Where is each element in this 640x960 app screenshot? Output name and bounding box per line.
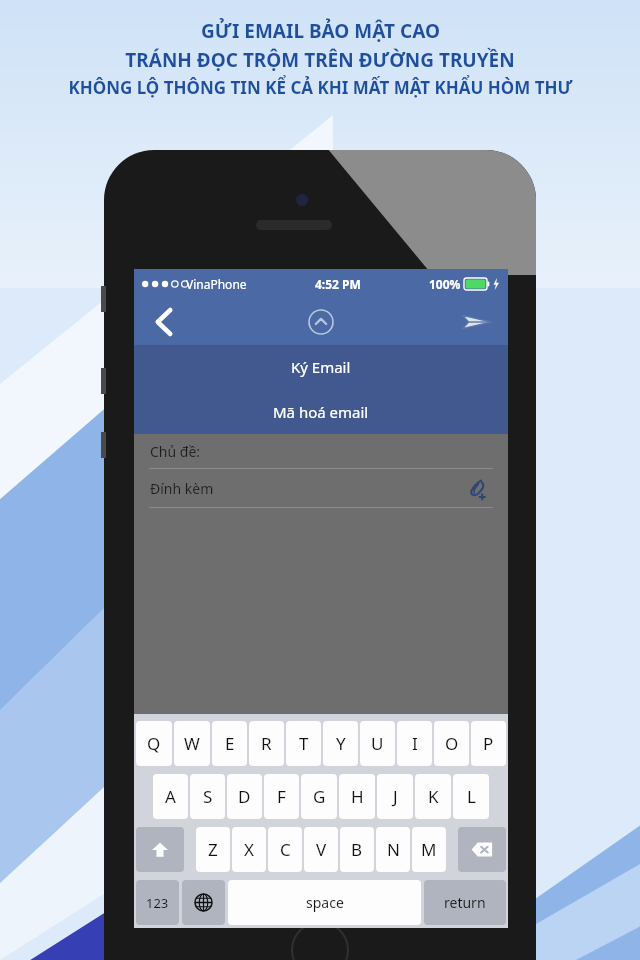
button[interactable]: Ký Email (134, 345, 508, 389)
button[interactable]: F (264, 774, 299, 819)
staticText: W (184, 732, 200, 755)
staticText: K (428, 785, 439, 808)
staticText: N (387, 838, 400, 861)
button[interactable]: Chủ đề: (134, 434, 508, 469)
staticText: R (261, 732, 272, 755)
button[interactable]: Send (446, 298, 508, 345)
button[interactable]: Expand (299, 300, 343, 344)
button[interactable]: space (228, 880, 421, 925)
staticText: B (351, 838, 363, 861)
staticText: O (445, 732, 459, 755)
staticText: S (203, 785, 213, 808)
staticText: G (313, 785, 326, 808)
button[interactable]: I (397, 721, 432, 766)
staticText: 100% (429, 276, 461, 292)
staticText: GỬI EMAIL BẢO MẬT CAO (201, 18, 440, 44)
button[interactable]: Z (196, 827, 230, 872)
staticText: Y (336, 732, 346, 755)
button[interactable]: Back (134, 298, 194, 345)
button[interactable]: U (360, 721, 395, 766)
staticText: H (351, 785, 364, 808)
staticText: Mã hoá email (273, 402, 369, 422)
button[interactable]: B (340, 827, 374, 872)
button[interactable]: 123 (136, 880, 179, 925)
staticText: 123 (146, 894, 169, 912)
button[interactable]: C (268, 827, 302, 872)
button[interactable]: G (301, 774, 337, 819)
staticText: space (306, 893, 344, 912)
button[interactable]: H (339, 774, 375, 819)
staticText: T (299, 732, 309, 755)
staticText: E (225, 732, 235, 755)
button[interactable]: M (412, 827, 446, 872)
staticText: X (244, 838, 254, 861)
button[interactable]: Shift (136, 827, 184, 872)
staticText: V (316, 838, 327, 861)
staticText: return (444, 893, 486, 912)
button[interactable]: O (434, 721, 469, 766)
staticText: Ký Email (291, 357, 351, 377)
button[interactable]: X (232, 827, 266, 872)
staticText: L (467, 785, 476, 808)
button[interactable]: Đính kèm (134, 469, 508, 508)
staticText: Z (208, 838, 218, 861)
staticText: A (165, 785, 176, 808)
button[interactable]: D (227, 774, 262, 819)
button[interactable]: Change keyboard (182, 880, 225, 925)
button[interactable]: E (212, 721, 247, 766)
staticText: TRÁNH ĐỌC TRỘM TRÊN ĐƯỜNG TRUYỀN (125, 47, 515, 73)
button[interactable]: V (304, 827, 338, 872)
button[interactable]: A (153, 774, 188, 819)
staticText: VinaPhone (186, 276, 247, 292)
button[interactable]: K (415, 774, 451, 819)
staticText: 4:52 PM (315, 276, 361, 292)
staticText: P (483, 732, 494, 755)
button[interactable]: Mã hoá email (134, 389, 508, 434)
staticText: KHÔNG LỘ THÔNG TIN KỂ CẢ KHI MẤT MẬT KHẨ… (68, 76, 573, 99)
staticText: C (280, 838, 291, 861)
button[interactable]: T (286, 721, 321, 766)
staticText: Q (147, 732, 161, 755)
staticText: D (238, 785, 251, 808)
staticText: J (393, 785, 398, 808)
button[interactable]: N (376, 827, 410, 872)
button[interactable]: J (377, 774, 413, 819)
button[interactable]: S (190, 774, 225, 819)
staticText: F (277, 785, 286, 808)
button[interactable]: R (249, 721, 284, 766)
staticText: Đính kèm (150, 479, 214, 498)
button[interactable]: P (471, 721, 506, 766)
button[interactable]: Q (136, 721, 172, 766)
button[interactable]: return (424, 880, 506, 925)
button[interactable]: Delete (458, 827, 506, 872)
staticText: Chủ đề: (150, 442, 201, 461)
staticText: I (412, 732, 418, 755)
button[interactable]: Y (323, 721, 358, 766)
staticText: M (421, 838, 437, 861)
button[interactable]: L (453, 774, 489, 819)
button[interactable]: W (174, 721, 210, 766)
staticText: U (371, 732, 384, 755)
button[interactable]: Add attachment (464, 476, 490, 502)
